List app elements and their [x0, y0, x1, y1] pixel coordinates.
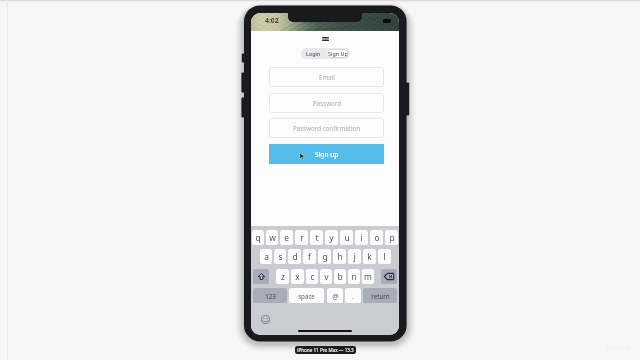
button[interactable]: i: [355, 230, 368, 245]
button[interactable]: e: [280, 230, 293, 245]
button[interactable]: o: [370, 230, 383, 245]
staticText: p: [389, 232, 395, 243]
staticText: a: [264, 251, 269, 262]
staticText: l: [383, 251, 386, 262]
staticText: g: [322, 251, 328, 262]
button[interactable]: w: [266, 230, 278, 245]
staticText: j: [353, 251, 356, 262]
staticText: Password confirmation: [293, 124, 361, 132]
staticText: y: [329, 232, 334, 243]
staticText: i: [360, 232, 363, 243]
staticText: v: [324, 271, 329, 282]
staticText: r: [300, 232, 304, 243]
staticText: iPhone 11 Pro Max — 13.3: [297, 347, 354, 353]
staticText: @: [332, 291, 339, 301]
button[interactable]: d: [288, 249, 301, 264]
button[interactable]: j: [348, 249, 361, 264]
staticText: Sign up: [315, 150, 339, 159]
staticText: 123: [265, 292, 276, 300]
staticText: h: [337, 251, 343, 262]
button[interactable]: p: [385, 230, 398, 245]
button[interactable]: Menu: [317, 32, 334, 45]
staticText: q: [255, 232, 261, 243]
staticText: t: [315, 232, 319, 243]
button[interactable]: u: [340, 230, 353, 245]
staticText: x: [295, 271, 300, 282]
button[interactable]: b: [334, 269, 346, 284]
staticText: z: [281, 271, 285, 282]
staticText: e: [284, 232, 289, 243]
staticText: w: [269, 232, 276, 243]
button[interactable]: Login: [301, 48, 325, 59]
button[interactable]: space: [289, 288, 324, 303]
staticText: .: [352, 291, 354, 301]
staticText: m: [364, 271, 372, 282]
button[interactable]: .: [345, 288, 361, 303]
button[interactable]: Email: [269, 67, 384, 87]
staticText: b: [337, 271, 343, 282]
staticText: f: [308, 251, 311, 262]
button[interactable]: l: [378, 249, 391, 264]
button[interactable]: m: [362, 269, 374, 284]
button[interactable]: f: [303, 249, 316, 264]
button[interactable]: h: [333, 249, 346, 264]
button[interactable]: s: [274, 249, 286, 264]
button[interactable]: Emoji keyboard: [261, 315, 270, 324]
button[interactable]: Password confirmation: [269, 118, 384, 138]
button[interactable]: Shift: [253, 269, 269, 284]
staticText: u: [344, 232, 350, 243]
button[interactable]: g: [318, 249, 331, 264]
staticText: 4:02: [265, 16, 279, 25]
button[interactable]: Sign up: [269, 144, 384, 164]
button[interactable]: Sign Up: [326, 49, 349, 58]
staticText: c: [310, 271, 315, 282]
button[interactable]: return: [363, 288, 397, 303]
button[interactable]: Backspace: [381, 269, 397, 284]
staticText: space: [298, 292, 315, 300]
staticText: Password: [313, 99, 341, 107]
staticText: o: [374, 232, 380, 243]
staticText: Login: [306, 50, 321, 57]
staticText: s: [278, 251, 283, 262]
staticText: d: [292, 251, 298, 262]
button[interactable]: x: [291, 269, 304, 284]
button[interactable]: z: [276, 269, 289, 284]
staticText: Sign Up: [328, 50, 348, 57]
button[interactable]: a: [260, 249, 272, 264]
button[interactable]: k: [363, 249, 376, 264]
button[interactable]: r: [295, 230, 308, 245]
button[interactable]: @: [327, 288, 343, 303]
button[interactable]: q: [252, 230, 264, 245]
staticText: k: [367, 251, 372, 262]
staticText: Email: [319, 73, 335, 81]
button[interactable]: 123: [253, 288, 287, 303]
button[interactable]: v: [320, 269, 332, 284]
button[interactable]: Password: [269, 93, 384, 113]
staticText: n: [351, 271, 357, 282]
button[interactable]: t: [310, 230, 323, 245]
button[interactable]: n: [348, 269, 360, 284]
staticText: return: [371, 292, 390, 300]
button[interactable]: c: [306, 269, 318, 284]
button[interactable]: y: [325, 230, 338, 245]
